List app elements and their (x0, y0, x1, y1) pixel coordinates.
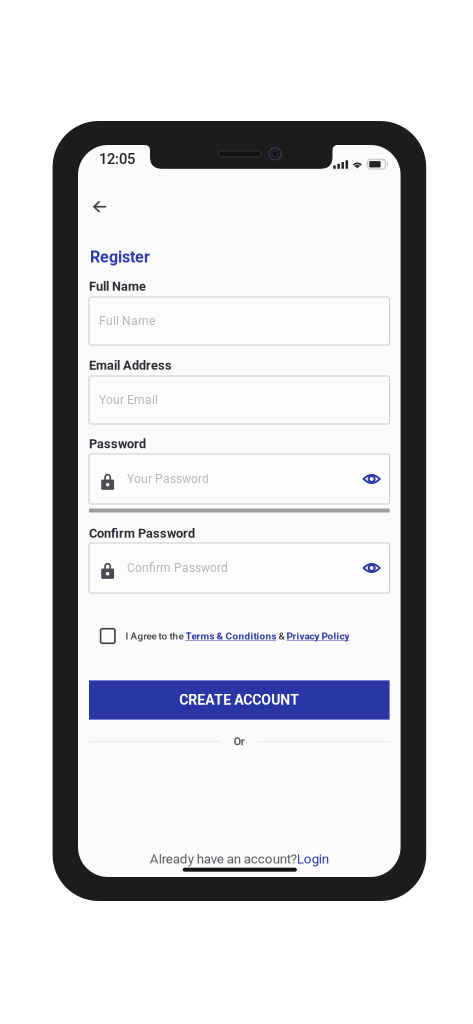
staticText: 12:05 (99, 150, 135, 168)
staticText: Password (89, 437, 146, 451)
staticText: Register (90, 248, 150, 266)
staticText: Full Name (89, 279, 146, 294)
staticText: Or (234, 735, 245, 748)
staticText: Privacy Policy (286, 630, 349, 642)
button[interactable]: I Agree to the (101, 627, 390, 644)
staticText: Full Name (99, 314, 155, 328)
staticText: Already have an account? (150, 851, 297, 867)
staticText: Your Password (127, 472, 209, 486)
staticText: Email Address (89, 358, 172, 373)
staticText: Confirm Password (127, 561, 228, 575)
button[interactable]: Show password (358, 467, 386, 491)
staticText: Confirm Password (89, 526, 195, 541)
button[interactable]: Show password (358, 555, 386, 580)
staticText: I Agree to the (125, 630, 185, 642)
staticText: Your Email (99, 393, 158, 407)
button[interactable]: CREATE ACCOUNT (89, 680, 390, 720)
staticText: & (276, 630, 286, 642)
staticText: Terms & Conditions (185, 630, 276, 642)
staticText: CREATE ACCOUNT (179, 692, 299, 708)
staticText: Login (297, 851, 329, 867)
button[interactable]: Back (86, 193, 114, 220)
button[interactable]: Already have an account? (78, 850, 401, 868)
